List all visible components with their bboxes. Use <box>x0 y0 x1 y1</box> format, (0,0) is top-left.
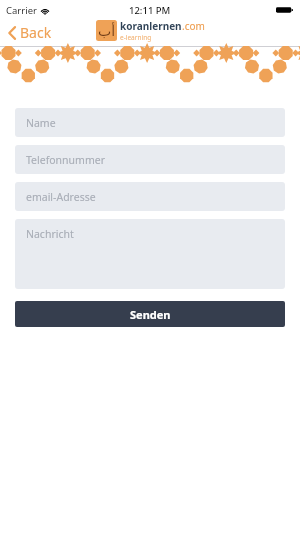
button[interactable]: email-Adresse <box>15 182 285 211</box>
staticText: Senden <box>130 307 171 322</box>
staticText: أب <box>98 23 116 39</box>
staticText: 12:11 PM <box>129 4 171 17</box>
button[interactable]: Senden <box>15 301 285 327</box>
staticText: Telefonnummer <box>26 153 105 167</box>
staticText: Carrier <box>6 4 37 17</box>
staticText: koranlernen <box>120 19 182 33</box>
button[interactable]: Nachricht <box>15 219 285 289</box>
staticText: Back <box>20 23 52 42</box>
button[interactable]: Telefonnummer <box>15 145 285 174</box>
button[interactable]: Name <box>15 108 285 137</box>
staticText: e-learning <box>120 33 152 42</box>
staticText: .com <box>182 19 205 33</box>
staticText: email-Adresse <box>26 190 96 204</box>
staticText: Name <box>26 116 56 130</box>
button[interactable]: Back <box>6 20 54 45</box>
staticText: Nachricht <box>26 227 74 241</box>
